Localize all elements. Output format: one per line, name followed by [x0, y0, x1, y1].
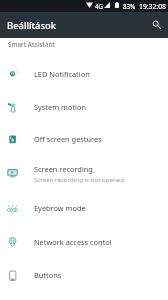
- button[interactable]: LED Notification: [0, 57, 168, 90]
- button[interactable]: Off screen gestures: [0, 123, 168, 155]
- staticText: Screen recording is not opened: [34, 175, 124, 183]
- staticText: Off screen gestures: [34, 134, 102, 144]
- staticText: 4G: [95, 2, 104, 10]
- button[interactable]: Search: [142, 12, 168, 38]
- staticText: Buttons: [34, 270, 62, 280]
- staticText: Beállítások: [7, 19, 57, 32]
- staticText: 19:32:08: [139, 2, 166, 11]
- button[interactable]: System motion: [0, 90, 168, 123]
- staticText: Eyebrow mode: [34, 203, 86, 213]
- staticText: 83%: [123, 2, 136, 10]
- button[interactable]: Buttons: [0, 258, 168, 292]
- button[interactable]: Screen recording: [0, 155, 168, 191]
- staticText: Network access contol: [34, 237, 112, 247]
- staticText: Screen recording: [34, 164, 93, 174]
- staticText: LED Notification: [34, 69, 90, 79]
- staticText: System motion: [34, 102, 87, 112]
- staticText: Smart Assistant: [8, 40, 55, 49]
- button[interactable]: Eyebrow mode: [0, 191, 168, 225]
- button[interactable]: Network access contol: [0, 225, 168, 258]
